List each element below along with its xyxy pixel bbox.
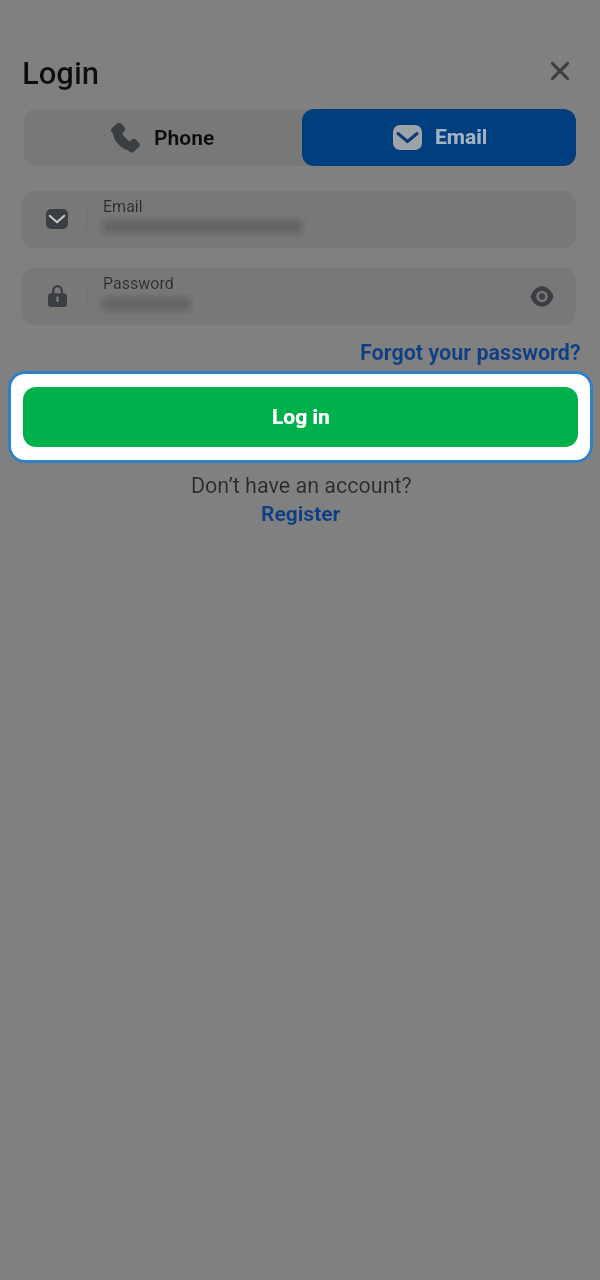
button[interactable]: Close (536, 47, 584, 95)
button[interactable]: Log in (23, 387, 578, 447)
button[interactable]: Email (302, 109, 576, 166)
staticText: Register (261, 502, 341, 527)
button[interactable]: Forgot your password? (360, 334, 581, 370)
staticText: Forgot your password? (360, 340, 581, 365)
staticText: Phone (154, 126, 215, 151)
staticText: Password (103, 274, 174, 293)
button[interactable]: Password (22, 268, 576, 325)
staticText: Login (22, 55, 100, 91)
staticText: Log in (272, 405, 330, 430)
button[interactable]: Phone (24, 109, 302, 166)
staticText: Email (435, 125, 488, 150)
button[interactable]: Email (22, 191, 576, 248)
staticText: Don’t have an account? (191, 473, 412, 498)
button[interactable]: Show password (518, 272, 566, 320)
staticText: Email (103, 197, 143, 216)
button[interactable]: Register (261, 498, 341, 530)
